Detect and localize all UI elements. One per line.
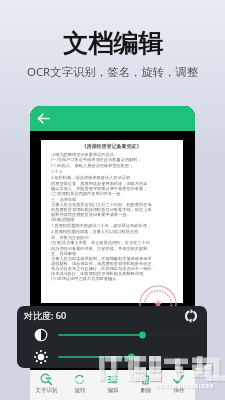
button[interactable]: Brightness slider: [57, 348, 199, 366]
staticText: 《房屋租赁登记备案凭证》: [51, 143, 172, 149]
button[interactable]: 保存: [162, 370, 195, 400]
staticText: 五、其他事项: [51, 251, 77, 256]
staticText: (二)出租人、承租人身份证明或者营业执照；: [51, 163, 134, 169]
staticText: 的房屋租赁管理机构办理租赁登记备案手续，提交上述: [51, 207, 152, 212]
staticText: 编辑: [107, 387, 119, 394]
staticText: 按本办法执行，由房屋租赁管理机构负责解释说明。: [51, 271, 148, 276]
staticText: 虚假材料。违反规定的，由房屋租赁管理机构责令改正。: [51, 261, 156, 266]
staticText: 四、变更与注销登记: [51, 235, 89, 240]
staticText: 材料并填写房屋租赁登记备案申请表一份。: [51, 212, 131, 217]
staticText: 旋转: [74, 387, 86, 394]
staticText: 2.组织机构，须办理或者取得法人登记证明。: [51, 175, 135, 181]
staticText: 对比度: 60: [24, 309, 67, 321]
staticText: 2.房屋租赁期间届满，当事人可以续订租赁合同。: [51, 229, 143, 235]
button[interactable]: 旋转: [63, 370, 96, 400]
button[interactable]: 编辑: [96, 370, 129, 400]
staticText: OCR文字识别，签名，旋转，调整: [27, 64, 199, 80]
staticText: 三、办理流程: [51, 197, 77, 202]
staticText: 内办理登记备案的变更、注销手续，并提交相关材料。: [51, 246, 152, 251]
button[interactable]: 删除: [129, 370, 162, 400]
staticText: (一)当地户口所证书或者居住合法权属证明材料；: [51, 157, 142, 163]
staticText: 删除: [140, 387, 152, 394]
button[interactable]: 文字识别: [30, 370, 63, 400]
staticText: 保存: [173, 387, 185, 394]
staticText: 1.房屋租赁期限不得超过二十年，超过部分无效处理；: [51, 223, 151, 229]
staticText: 本办法自发布之日起施行，此前规定与本办法不一致的: [51, 266, 152, 271]
staticText: (五)租赁当事人变更、终止租赁合同的，应当在三十日: [51, 240, 150, 246]
staticText: 文档编辑: [63, 28, 163, 59]
staticText: 1.个人: [51, 169, 63, 175]
staticText: 当事人应当如实提供材料，不得隐瞒有关情况或者提供: [51, 256, 152, 261]
button[interactable]: Reset adjustments: [184, 309, 198, 323]
button[interactable]: Contrast slider: [57, 326, 199, 344]
staticText: 当事人应当在租赁合同订立后三十日内，到房屋所在地: [51, 202, 152, 207]
staticText: 小编为您整理登记备案凭证的办法。: [51, 152, 118, 157]
staticText: (四)租赁期限: [51, 217, 75, 223]
button[interactable]: Back: [37, 112, 50, 125]
staticText: 确认后填入，并附房屋平面图以便于核查登记备案；: [51, 186, 148, 191]
staticText: 文字识别: [35, 387, 58, 394]
staticText: 房屋坐落位置、房屋用途及使用面积等，由双方约定: [51, 181, 148, 186]
staticText: (三)房屋租赁合同原件及复印件各一份。: [51, 191, 125, 197]
staticText: (六)本凭证由甲乙双方共同签署确认。: [51, 276, 121, 282]
